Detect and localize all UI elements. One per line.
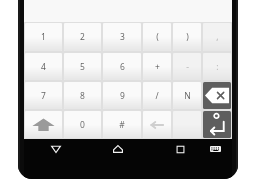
button[interactable]: / — [143, 82, 171, 109]
staticText: # — [119, 119, 125, 131]
button[interactable]: 4 — [25, 53, 62, 80]
staticText: ) — [186, 31, 189, 43]
button[interactable]: Backspace — [203, 82, 231, 109]
button[interactable]: Home — [109, 140, 127, 158]
button[interactable]: Enter — [203, 111, 231, 138]
staticText: 8 — [80, 90, 85, 102]
button[interactable]: N — [173, 82, 201, 109]
button[interactable]: + — [143, 53, 171, 80]
button[interactable]: 8 — [64, 82, 101, 109]
staticText: ( — [156, 31, 159, 43]
button[interactable]: Shift — [25, 111, 62, 138]
button[interactable] — [173, 111, 201, 138]
button[interactable]: Switch keyboard — [207, 141, 223, 157]
staticText: / — [155, 90, 159, 102]
staticText: 1 — [41, 31, 46, 43]
button[interactable]: ( — [143, 23, 171, 51]
staticText: 7 — [41, 90, 46, 102]
button[interactable]: Recents — [171, 140, 189, 158]
staticText: - — [186, 61, 189, 73]
button[interactable]: # — [103, 111, 141, 138]
staticText: 3 — [120, 31, 125, 43]
button[interactable]: - — [173, 53, 201, 80]
staticText: 2 — [80, 31, 85, 43]
staticText: 5 — [80, 61, 85, 73]
button[interactable]: 9 — [103, 82, 141, 109]
staticText: 9 — [120, 90, 125, 102]
button[interactable]: Tab — [143, 111, 171, 138]
button[interactable]: 3 — [103, 23, 141, 51]
button[interactable]: 7 — [25, 82, 62, 109]
staticText: N — [184, 90, 191, 102]
button[interactable]: ) — [173, 23, 201, 51]
button[interactable]: Back — [47, 140, 65, 158]
staticText: 0 — [80, 119, 85, 131]
staticText: + — [155, 61, 160, 73]
staticText: , — [216, 31, 219, 43]
button[interactable]: , — [203, 23, 231, 51]
staticText: 4 — [41, 61, 46, 73]
button[interactable]: 6 — [103, 53, 141, 80]
button[interactable]: 1 — [25, 23, 62, 51]
button[interactable]: : — [203, 53, 231, 80]
staticText: : — [216, 61, 219, 73]
button[interactable]: 0 — [64, 111, 101, 138]
staticText: 6 — [120, 61, 125, 73]
button[interactable]: 2 — [64, 23, 101, 51]
button[interactable]: 5 — [64, 53, 101, 80]
